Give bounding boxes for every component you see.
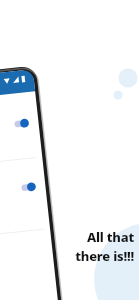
staticText: All that — [86, 228, 134, 246]
staticText: there is!!! — [75, 247, 134, 265]
button[interactable]: App preview on phone — [0, 68, 65, 300]
button[interactable]: All that — [62, 228, 134, 265]
